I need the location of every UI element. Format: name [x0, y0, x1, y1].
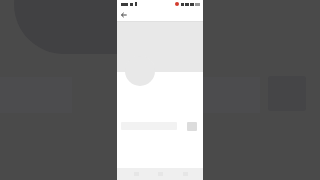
button[interactable]	[117, 120, 203, 132]
button[interactable]: Home	[154, 169, 166, 179]
button[interactable]: Back	[130, 169, 142, 179]
button[interactable]: Back	[119, 10, 129, 20]
button[interactable]: Profile photo	[125, 56, 155, 86]
button[interactable]: Recents	[179, 169, 191, 179]
